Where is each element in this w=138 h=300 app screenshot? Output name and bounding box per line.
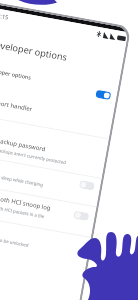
staticText: Developer options	[0, 37, 69, 64]
staticText: Allow the bootloader to be unlocked	[0, 229, 29, 248]
staticText: Bug report handler	[0, 96, 34, 113]
button[interactable]: On	[95, 90, 111, 100]
button[interactable]: Off	[79, 180, 95, 191]
button[interactable]: Off	[73, 211, 89, 221]
staticText: Capture all bluetooth HCI packets in a f…	[0, 198, 46, 219]
staticText: 22:15	[0, 11, 10, 22]
staticText: Desktop full backups aren't currently pr…	[0, 142, 67, 165]
staticText: Enable Bluetooth HCI snoop log	[0, 188, 51, 212]
staticText: Desktop backup password	[0, 132, 47, 153]
staticText: Developer options	[0, 65, 32, 81]
staticText: Screen will never sleep while charging	[0, 168, 44, 188]
